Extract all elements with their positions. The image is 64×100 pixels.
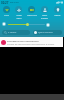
staticText: mié 3 nov [10,1,19,4]
other: Brightness [2,22,6,26]
button[interactable]: Modo avión [12,5,25,20]
staticText: S Finder [8,31,17,34]
button[interactable]: Modo privado [38,5,51,20]
button[interactable]: Wi-Fi [0,5,12,20]
staticText: Modo avión [16,14,22,19]
staticText: Quick connect [38,31,53,34]
button[interactable]: Ubicac. [51,5,64,20]
button[interactable]: Quick connect [33,30,62,35]
staticText: Modo privado [41,14,48,19]
staticText: Ubicac. [54,14,61,17]
button[interactable]: Privilegios para dispositivos [0,37,63,47]
button[interactable]: S Finder [2,30,30,35]
button[interactable]: Zona Wi-Fi [25,5,38,20]
other: Auto brightness [46,23,50,27]
staticText: Zona Wi-Fi [27,14,37,17]
staticText: Cambia de administrador para gestionar e… [7,43,55,46]
staticText: Wi-Fi [4,14,9,17]
staticText: 02:27 [1,1,9,5]
staticText: Privilegios para dispositivos [7,39,39,42]
